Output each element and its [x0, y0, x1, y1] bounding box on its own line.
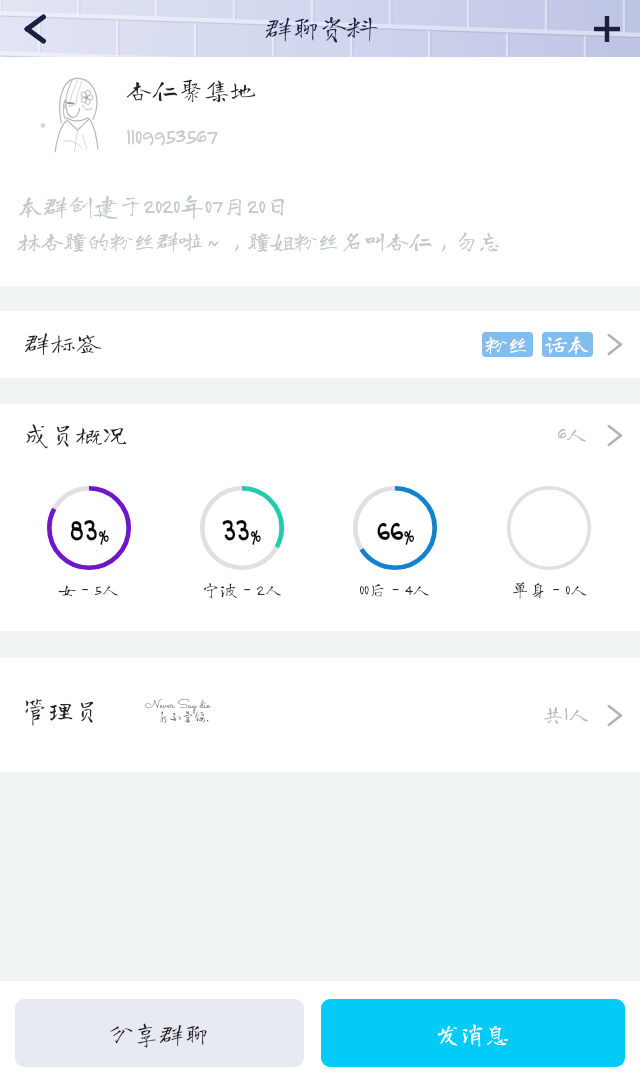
- staticText: 杏仁聚集地: [126, 76, 257, 102]
- staticText: 群标签: [24, 329, 103, 355]
- button[interactable]: 成员概况: [0, 404, 640, 466]
- button[interactable]: Back: [8, 2, 62, 56]
- staticText: 1109953567: [126, 123, 217, 149]
- staticText: 发消息: [435, 1021, 511, 1046]
- staticText: 00后–4人: [359, 580, 431, 598]
- staticText: 话本: [545, 333, 590, 355]
- staticText: 管理员: [22, 697, 101, 723]
- button[interactable]: Add member: [580, 2, 634, 56]
- staticText: 永不气馁.: [157, 710, 209, 722]
- staticText: 6人: [557, 423, 588, 445]
- staticText: %: [404, 526, 415, 551]
- button[interactable]: 群标签: [0, 311, 640, 378]
- staticText: Never Say die: [145, 696, 211, 715]
- staticText: 成员概况: [24, 421, 129, 447]
- staticText: 本群创建于2020年07月20日: [18, 193, 290, 218]
- button[interactable]: 发消息: [321, 999, 625, 1067]
- staticText: 单身–0人: [511, 580, 588, 598]
- button[interactable]: 管理员: [0, 658, 640, 772]
- staticText: 女–5人: [58, 580, 120, 598]
- staticText: 共1人: [542, 703, 590, 725]
- staticText: 粉丝: [485, 333, 530, 355]
- staticText: 群聊资料: [264, 13, 377, 41]
- staticText: 66: [376, 513, 404, 553]
- staticText: %: [251, 526, 261, 551]
- staticText: 宁波–2人: [202, 580, 283, 598]
- staticText: 分享群聊: [109, 1021, 210, 1046]
- staticText: 林杏瞳的粉丝群啦～，瞳姐粉丝名叫杏仁，勿忘: [18, 229, 501, 252]
- button[interactable]: 分享群聊: [15, 999, 304, 1067]
- staticText: 33: [222, 513, 251, 553]
- staticText: 83: [70, 513, 98, 553]
- staticText: %: [98, 526, 109, 551]
